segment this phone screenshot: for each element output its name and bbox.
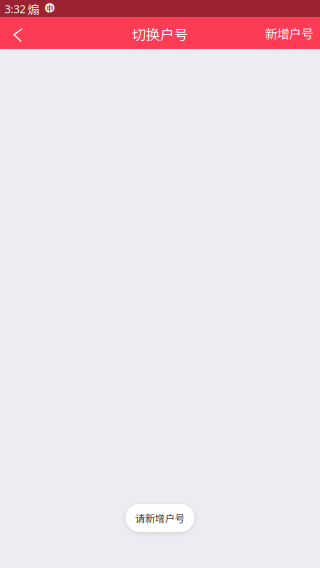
staticText: 煽 (27, 0, 39, 17)
staticText: 新增户号 (265, 24, 313, 42)
staticText: 切换户号 (132, 24, 188, 44)
button[interactable]: 新增户号 (265, 17, 320, 49)
staticText: 3:32 (4, 1, 25, 16)
button[interactable]: 请新增户号 (125, 504, 194, 532)
staticText: 电 (46, 2, 54, 14)
button[interactable]: 返回 (0, 17, 33, 49)
staticText: 请新增户号 (135, 511, 185, 525)
